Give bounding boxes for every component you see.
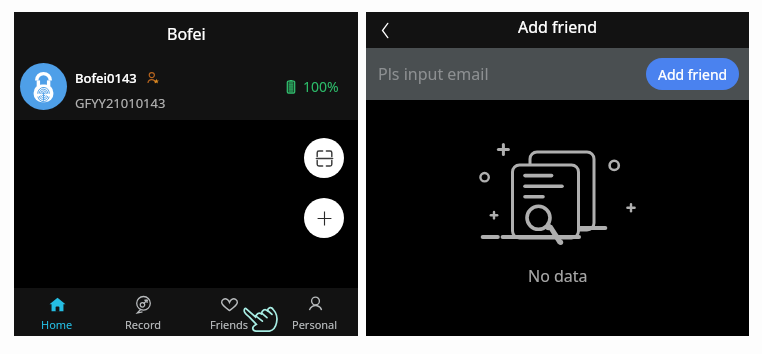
staticText: Pls input email (378, 63, 489, 85)
button[interactable]: Record (100, 288, 186, 336)
button[interactable]: Bofei0143 (14, 52, 358, 120)
staticText: No data (528, 265, 588, 287)
staticText: 100% (303, 77, 339, 96)
button[interactable]: Back (372, 12, 398, 48)
button[interactable]: Add device (304, 198, 344, 238)
button[interactable]: Personal (272, 288, 358, 336)
staticText: Friends (210, 317, 249, 332)
button[interactable]: Add friend (646, 58, 739, 90)
staticText: Add friend (658, 65, 728, 84)
staticText: Record (125, 317, 162, 332)
button[interactable]: Home (14, 288, 100, 336)
button[interactable]: Scan QR code (304, 138, 344, 178)
staticText: Home (41, 317, 73, 332)
staticText: GFYY21010143 (75, 94, 166, 112)
staticText: Bofei0143 (75, 69, 137, 87)
staticText: Add friend (518, 16, 598, 38)
button[interactable]: Friends (186, 288, 272, 336)
staticText: Personal (292, 317, 338, 332)
staticText: Bofei (167, 23, 206, 45)
